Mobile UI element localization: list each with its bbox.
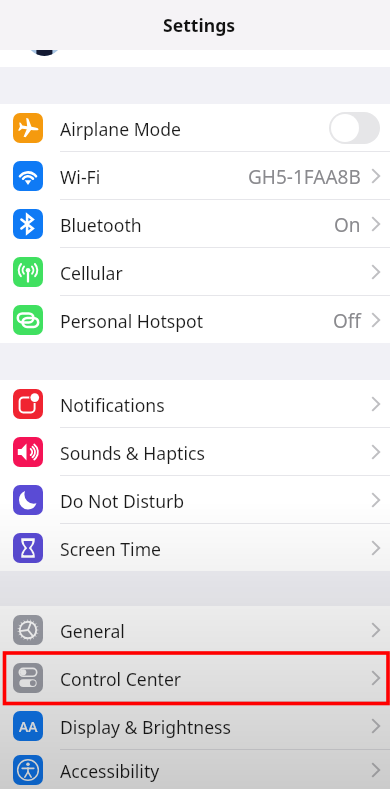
- staticText: Cellular: [60, 261, 123, 285]
- button[interactable]: Cellular: [0, 248, 390, 295]
- staticText: Sounds & Haptics: [60, 441, 205, 465]
- button[interactable]: Wi-Fi: [0, 152, 390, 199]
- staticText: Screen Time: [60, 537, 162, 561]
- button[interactable]: AA: [0, 702, 390, 749]
- staticText: General: [60, 619, 125, 643]
- button[interactable]: Do Not Disturb: [0, 476, 390, 523]
- staticText: Display & Brightness: [60, 715, 231, 739]
- staticText: Wi-Fi: [60, 165, 101, 189]
- button[interactable]: Airplane Mode toggle: [329, 112, 380, 144]
- button[interactable]: Sounds & Haptics: [0, 428, 390, 475]
- staticText: Control Center: [60, 667, 182, 691]
- staticText: Bluetooth: [60, 213, 142, 237]
- button[interactable]: Bluetooth: [0, 200, 390, 247]
- button[interactable]: Screen Time: [0, 524, 390, 571]
- button[interactable]: Notifications: [0, 380, 390, 427]
- staticText: GH5-1FAA8B: [248, 164, 361, 190]
- button[interactable]: General: [0, 606, 390, 653]
- staticText: Airplane Mode: [60, 117, 181, 141]
- staticText: On: [334, 212, 361, 238]
- button[interactable]: Airplane Mode: [0, 104, 390, 151]
- staticText: Off: [333, 308, 361, 334]
- button[interactable]: Accessibility: [0, 750, 390, 789]
- button[interactable]: Personal Hotspot: [0, 296, 390, 343]
- staticText: Settings: [163, 13, 236, 37]
- staticText: AA: [19, 717, 38, 736]
- staticText: Personal Hotspot: [60, 309, 204, 333]
- staticText: Notifications: [60, 393, 165, 417]
- staticText: Do Not Disturb: [60, 489, 185, 513]
- staticText: Accessibility: [60, 759, 160, 783]
- button[interactable]: Control Center: [0, 654, 390, 701]
